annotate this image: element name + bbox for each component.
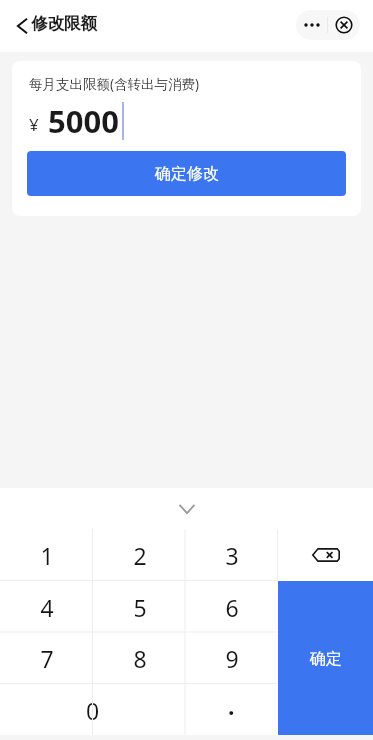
button[interactable]: 8 (93, 632, 186, 684)
staticText: 7 (40, 643, 54, 674)
button[interactable]: 2 (93, 529, 186, 581)
staticText: 修改限额 (31, 13, 97, 34)
button[interactable]: 3 (185, 529, 278, 581)
staticText: 6 (225, 592, 239, 623)
staticText: . (228, 690, 235, 721)
staticText: 0 (86, 695, 100, 726)
staticText: 3 (225, 540, 239, 571)
button[interactable]: Back (8, 11, 38, 41)
staticText: 每月支出限额(含转出与消费) (29, 75, 200, 93)
button[interactable]: 确定 (278, 581, 373, 736)
button[interactable]: 1 (0, 529, 93, 581)
button[interactable]: 0 (0, 684, 185, 736)
button[interactable]: Hide keyboard (0, 488, 373, 529)
staticText: 1 (40, 540, 54, 571)
staticText: 4 (40, 592, 54, 623)
button[interactable]: Backspace (278, 529, 373, 581)
staticText: ¥ (29, 113, 39, 136)
button[interactable]: 4 (0, 581, 93, 633)
staticText: 9 (225, 643, 239, 674)
button[interactable]: More (296, 10, 327, 40)
button[interactable]: . (185, 684, 278, 736)
button[interactable]: Close (328, 10, 360, 40)
button[interactable]: 5 (93, 581, 186, 633)
button[interactable]: 6 (185, 581, 278, 633)
staticText: 8 (133, 643, 147, 674)
staticText: 5000 (48, 100, 119, 142)
button[interactable]: 9 (185, 632, 278, 684)
staticText: 5 (133, 592, 147, 623)
button[interactable]: 确定修改 (27, 151, 346, 196)
staticText: 确定 (310, 649, 342, 669)
button[interactable]: 7 (0, 632, 93, 684)
staticText: 确定修改 (155, 164, 219, 184)
staticText: 2 (133, 540, 147, 571)
